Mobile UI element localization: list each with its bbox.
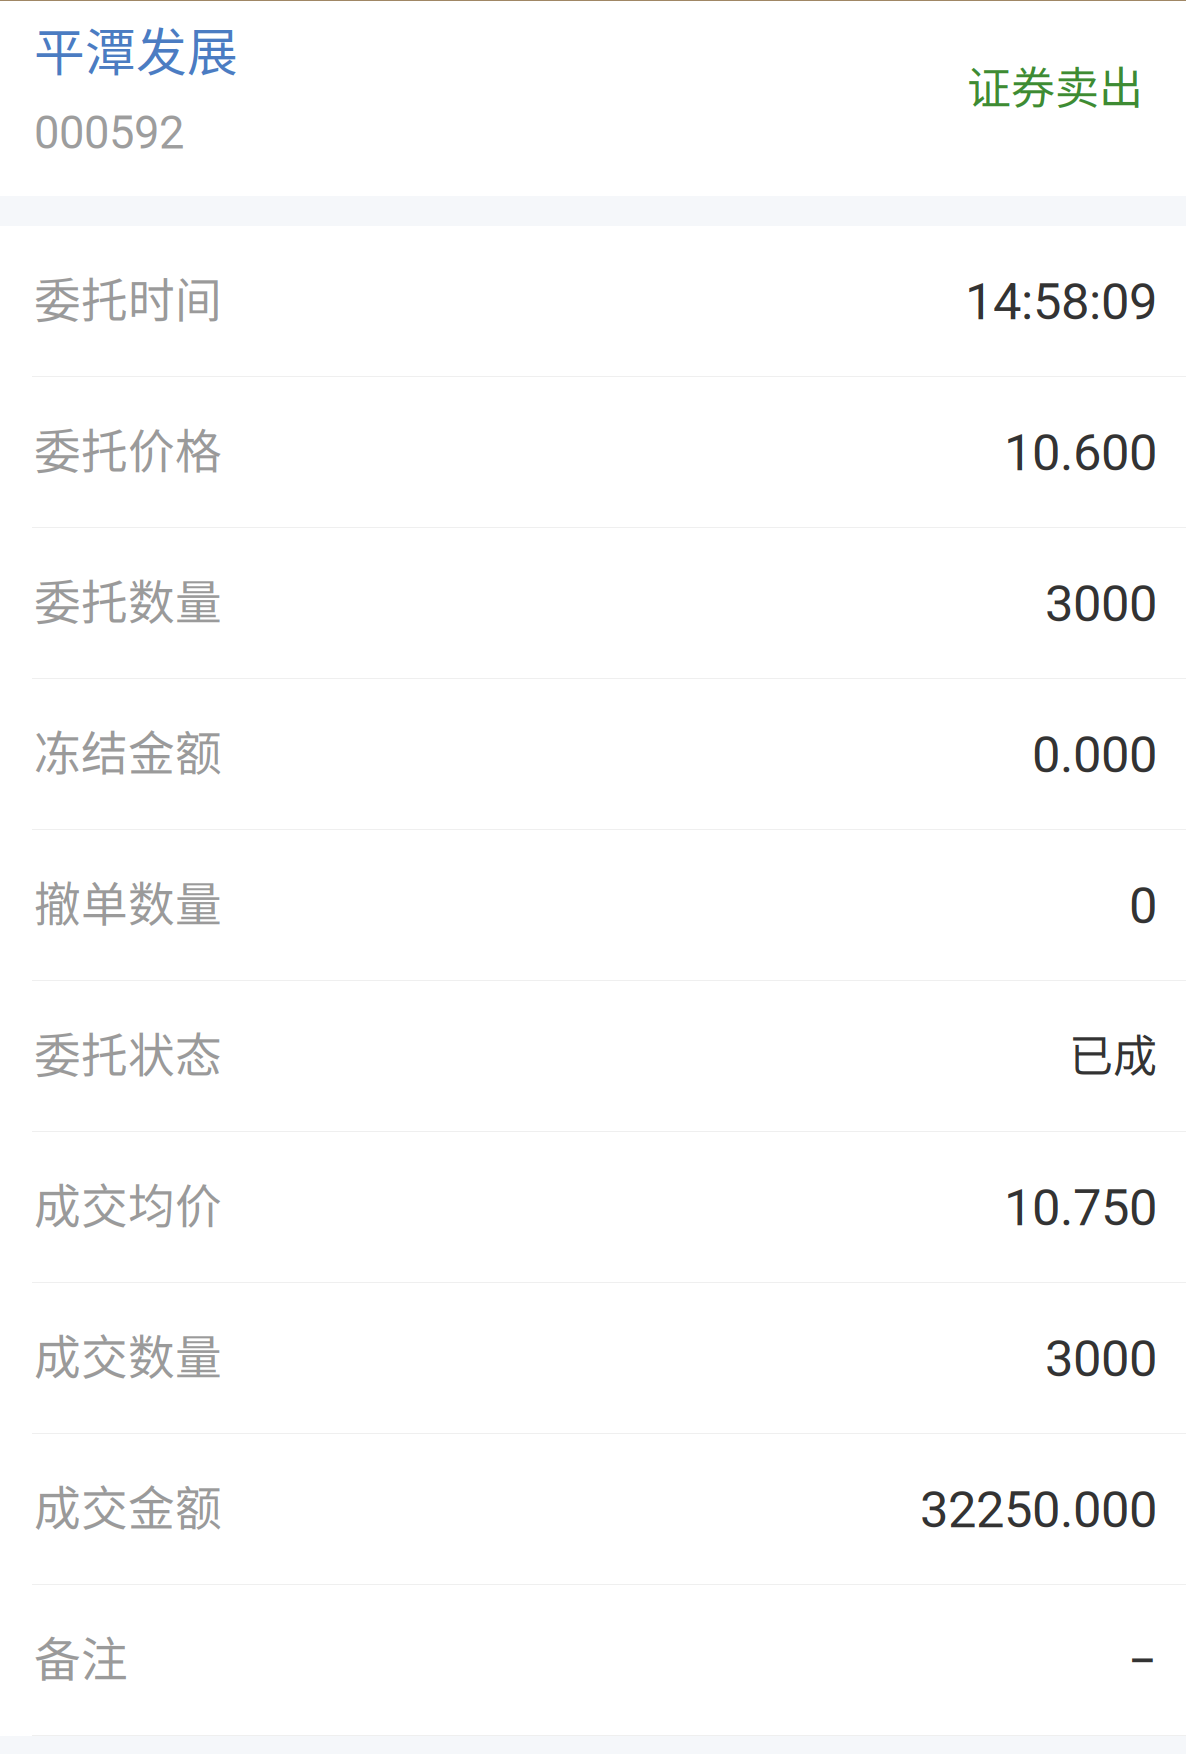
staticText: 10.600 xyxy=(1004,423,1157,483)
staticText: 撤单数量 xyxy=(34,867,222,935)
staticText: 委托时间 xyxy=(34,263,222,331)
staticText: 委托数量 xyxy=(34,565,222,633)
staticText: 10.750 xyxy=(1004,1178,1157,1238)
staticText: 3000 xyxy=(1045,574,1157,634)
staticText: 成交数量 xyxy=(34,1320,222,1388)
staticText: 证券卖出 xyxy=(967,53,1143,117)
staticText: 0 xyxy=(1129,876,1157,936)
staticText: 0.000 xyxy=(1032,725,1157,785)
staticText: 成交金额 xyxy=(34,1471,222,1539)
staticText: − xyxy=(1128,1631,1157,1691)
staticText: 冻结金额 xyxy=(34,716,222,784)
staticText: 14:58:09 xyxy=(965,272,1157,332)
staticText: 平潭发展 xyxy=(34,12,238,86)
staticText: 备注 xyxy=(34,1622,128,1690)
staticText: 成交均价 xyxy=(34,1169,222,1237)
staticText: 委托价格 xyxy=(34,414,222,482)
staticText: 已成 xyxy=(1069,1021,1157,1085)
staticText: 32250.000 xyxy=(920,1480,1157,1540)
staticText: 3000 xyxy=(1045,1329,1157,1389)
staticText: 委托状态 xyxy=(34,1018,222,1086)
button[interactable]: 平潭发展 xyxy=(34,1,238,169)
staticText: 000592 xyxy=(34,106,184,159)
